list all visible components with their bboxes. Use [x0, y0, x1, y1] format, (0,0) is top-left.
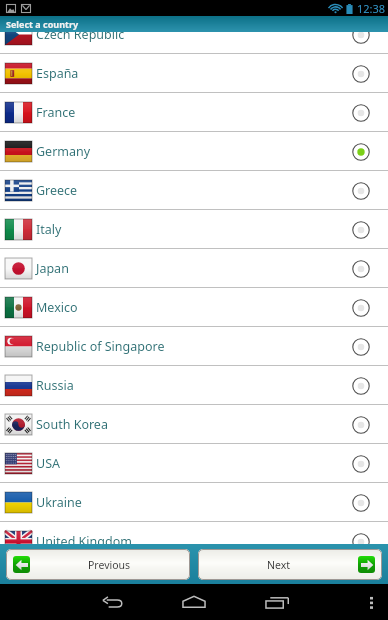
- button[interactable]: Republic of Singapore: [0, 327, 388, 366]
- staticText: Italy: [36, 221, 352, 238]
- button[interactable]: Japan: [0, 249, 388, 288]
- button[interactable]: Italy: [0, 210, 388, 249]
- staticText: Japan: [36, 260, 352, 277]
- staticText: Select a country: [6, 18, 79, 30]
- button[interactable]: USA: [0, 444, 388, 483]
- button[interactable]: Recent apps: [249, 584, 305, 620]
- staticText: Czech Republic: [36, 26, 352, 43]
- staticText: Previous: [88, 558, 131, 572]
- button[interactable]: Ukraine: [0, 483, 388, 522]
- button[interactable]: More options: [354, 584, 388, 620]
- staticText: Republic of Singapore: [36, 338, 352, 355]
- staticText: South Korea: [36, 416, 352, 433]
- button[interactable]: Greece: [0, 171, 388, 210]
- button[interactable]: Next: [198, 549, 382, 580]
- staticText: USA: [36, 455, 352, 472]
- button[interactable]: Germany: [0, 132, 388, 171]
- button[interactable]: España: [0, 54, 388, 93]
- staticText: 12:38: [357, 1, 386, 16]
- staticText: Russia: [36, 377, 352, 394]
- button[interactable]: France: [0, 93, 388, 132]
- staticText: Ukraine: [36, 494, 352, 511]
- staticText: Greece: [36, 182, 352, 199]
- staticText: España: [36, 65, 352, 82]
- button[interactable]: Czech Republic: [0, 15, 388, 54]
- button[interactable]: Previous: [6, 549, 190, 580]
- button[interactable]: Russia: [0, 366, 388, 405]
- staticText: Germany: [36, 143, 352, 160]
- button[interactable]: United Kingdom: [0, 522, 388, 561]
- staticText: Next: [267, 558, 291, 572]
- staticText: Mexico: [36, 299, 352, 316]
- button[interactable]: Home: [166, 584, 222, 620]
- button[interactable]: Back: [84, 584, 140, 620]
- button[interactable]: Mexico: [0, 288, 388, 327]
- staticText: United Kingdom: [36, 533, 352, 550]
- button[interactable]: South Korea: [0, 405, 388, 444]
- staticText: France: [36, 104, 352, 121]
